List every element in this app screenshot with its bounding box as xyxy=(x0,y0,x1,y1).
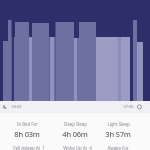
staticText: 07:05 xyxy=(123,104,134,109)
staticText: Woke Up At 4 xyxy=(63,145,92,150)
staticText: Fell Asleep At 1 xyxy=(13,145,45,150)
staticText: Light Sleep xyxy=(107,121,130,127)
staticText: 23:02 xyxy=(11,104,22,109)
staticText: 4h 06m xyxy=(62,129,88,139)
staticText: Deep Sleep xyxy=(64,121,87,127)
staticText: 3h 57m xyxy=(105,129,131,139)
staticText: In Bed For xyxy=(17,121,38,127)
staticText: 8h 03m xyxy=(14,129,40,139)
staticText: Awake For xyxy=(107,145,129,150)
